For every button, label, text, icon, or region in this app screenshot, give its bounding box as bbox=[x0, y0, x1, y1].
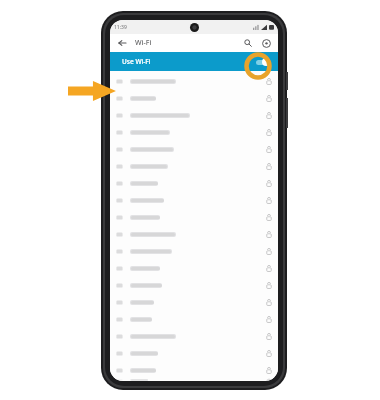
button[interactable] bbox=[110, 362, 278, 379]
button[interactable]: Back bbox=[115, 36, 129, 50]
staticText: Wi-Fi bbox=[135, 38, 152, 48]
button[interactable] bbox=[110, 209, 278, 226]
button[interactable] bbox=[110, 294, 278, 311]
button[interactable] bbox=[110, 124, 278, 141]
button[interactable] bbox=[110, 226, 278, 243]
staticText: Use Wi-Fi bbox=[122, 57, 151, 66]
button[interactable] bbox=[110, 260, 278, 277]
button[interactable] bbox=[110, 243, 278, 260]
staticText: 11:39 bbox=[114, 24, 127, 31]
other: Callout arrow bbox=[68, 80, 116, 102]
button[interactable] bbox=[110, 345, 278, 362]
button[interactable] bbox=[110, 73, 278, 90]
button[interactable]: Use Wi-Fi bbox=[110, 52, 278, 71]
button[interactable] bbox=[110, 90, 278, 107]
button[interactable] bbox=[110, 311, 278, 328]
button[interactable]: Help bbox=[259, 36, 273, 50]
button[interactable] bbox=[110, 158, 278, 175]
button[interactable] bbox=[110, 328, 278, 345]
button[interactable] bbox=[110, 175, 278, 192]
button[interactable] bbox=[110, 141, 278, 158]
button[interactable] bbox=[110, 379, 278, 381]
button[interactable]: Search bbox=[241, 36, 255, 50]
button[interactable] bbox=[110, 192, 278, 209]
button[interactable] bbox=[110, 107, 278, 124]
other: Wi-Fi toggle highlight bbox=[244, 52, 272, 80]
button[interactable] bbox=[110, 277, 278, 294]
